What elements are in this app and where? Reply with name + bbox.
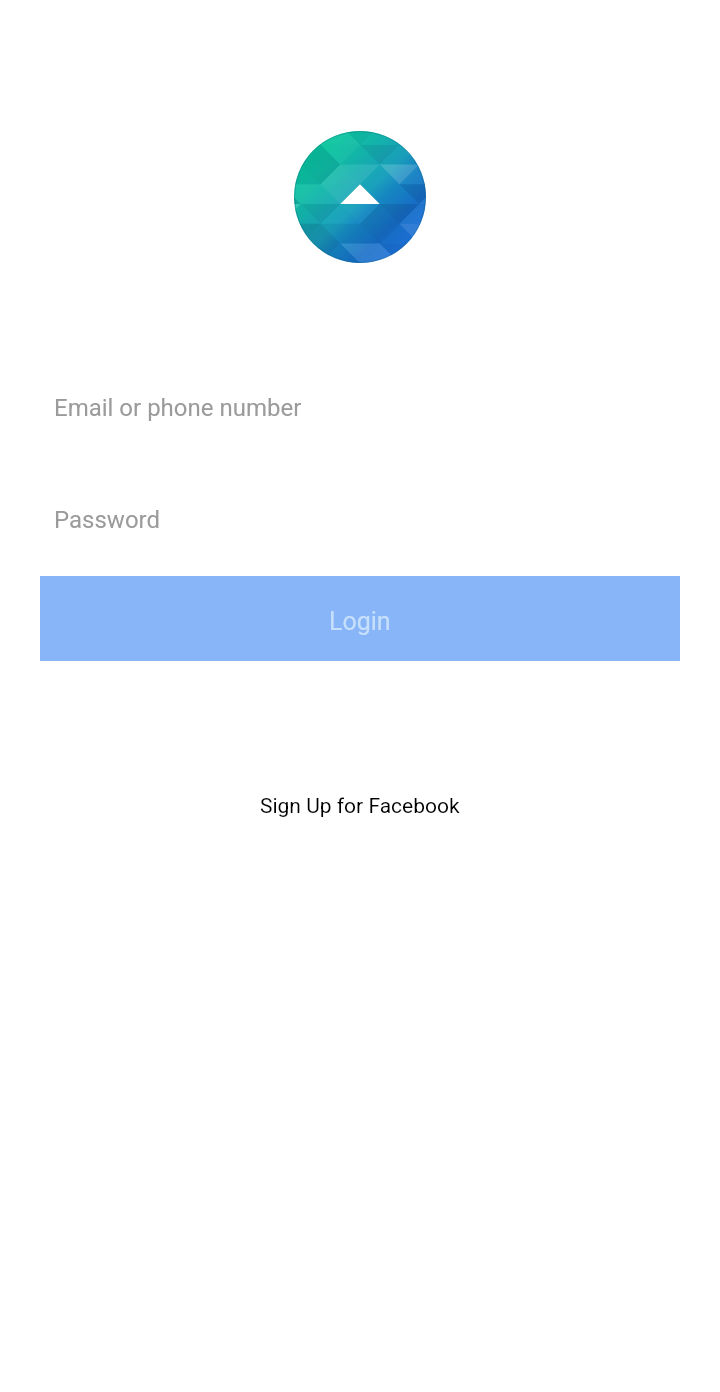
button[interactable]: Password (0, 500, 720, 534)
staticText: Sign Up for Facebook (260, 794, 460, 819)
staticText: Email or phone number (54, 394, 302, 422)
staticText: Password (54, 506, 161, 534)
other: App logo (294, 131, 426, 263)
button[interactable]: Sign Up for Facebook (0, 778, 720, 834)
staticText: Login (329, 607, 391, 636)
button[interactable]: Login (40, 576, 680, 661)
button[interactable]: Email or phone number (0, 344, 720, 422)
